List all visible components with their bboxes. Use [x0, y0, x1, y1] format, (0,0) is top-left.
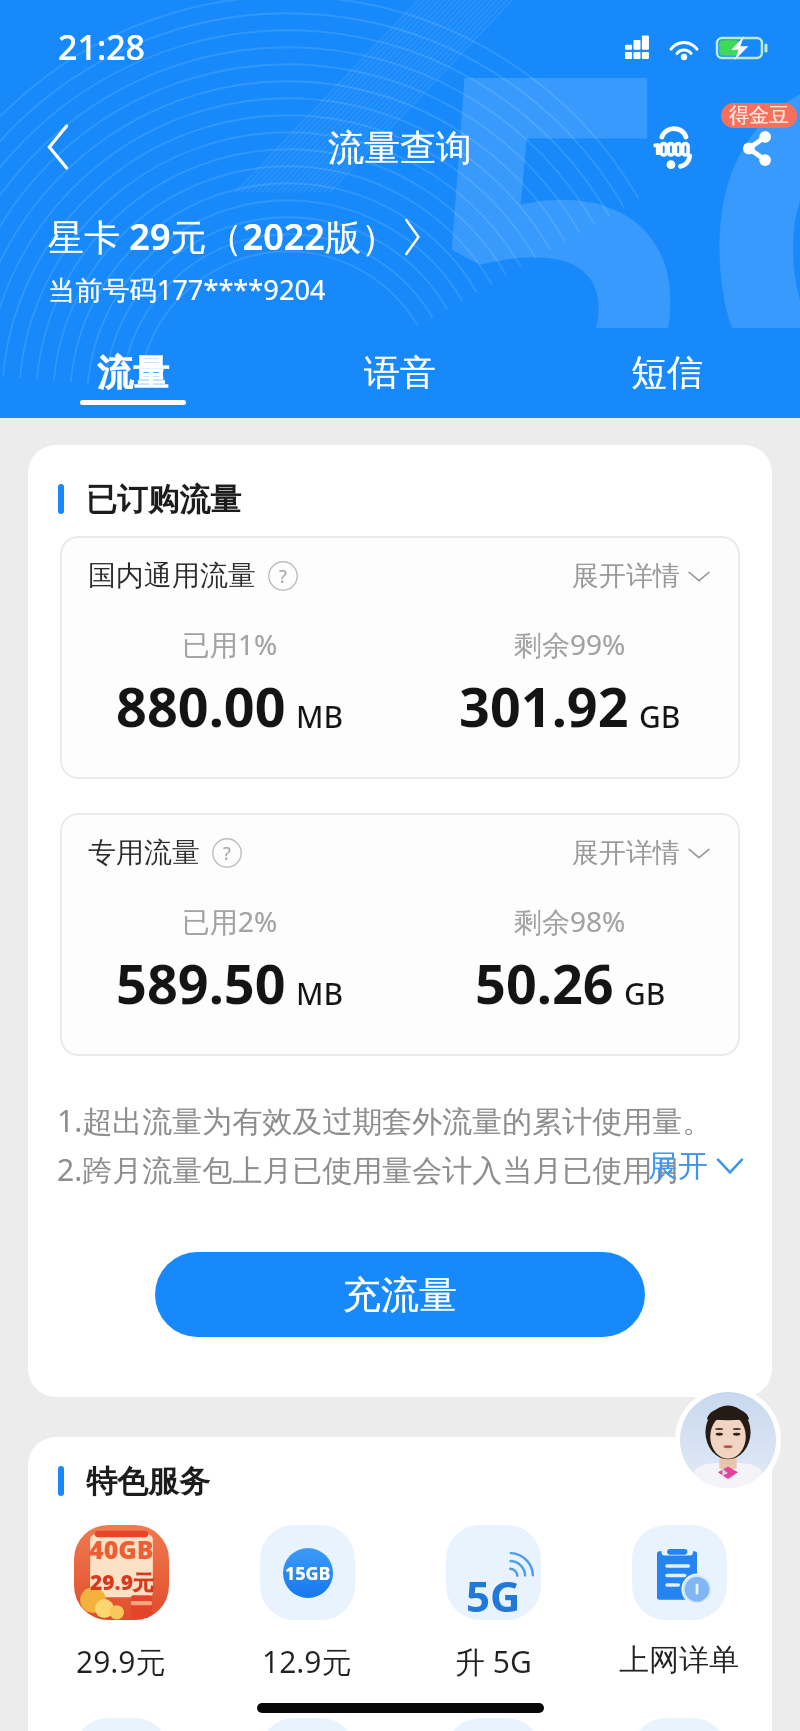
staticText: 5G: [422, 0, 800, 328]
staticText: 2.跨月流量包上月已使用量会计入当月已使用月: [57, 1149, 683, 1190]
staticText: 剩余98%: [514, 902, 626, 940]
staticText: 国内通用流量: [88, 558, 256, 593]
staticText: 特色服务: [86, 1462, 210, 1501]
button[interactable]: Back: [16, 105, 100, 189]
staticText: MB: [296, 696, 344, 737]
staticText: 展开详情: [572, 559, 680, 593]
staticText: 已用1%: [182, 625, 278, 663]
staticText: 升 5G: [455, 1641, 532, 1682]
staticText: 40GB: [89, 1532, 154, 1566]
staticText: 15GB: [285, 1561, 331, 1586]
staticText: 已用2%: [182, 902, 278, 940]
staticText: 展开详情: [572, 836, 680, 870]
button[interactable]: 短信: [533, 350, 800, 418]
staticText: GB: [624, 973, 666, 1014]
button[interactable]: 国内通用流量: [60, 536, 740, 779]
button[interactable]: 语音: [266, 350, 533, 418]
staticText: 充流量: [343, 1271, 457, 1319]
button[interactable]: 15GB: [214, 1525, 400, 1682]
button[interactable]: [400, 1718, 586, 1731]
staticText: 29.9元: [76, 1641, 166, 1682]
staticText: 21:28: [58, 24, 146, 70]
button[interactable]: Customer service 10000: [634, 109, 712, 187]
staticText: 1.超出流量为有效及过期套外流量的累计使用量。: [57, 1100, 713, 1141]
staticText: MB: [296, 973, 344, 1014]
button[interactable]: [214, 1718, 400, 1731]
button[interactable]: 40GB: [28, 1525, 214, 1682]
staticText: 589.50: [116, 946, 286, 1020]
staticText: 5G: [466, 1567, 521, 1620]
button[interactable]: 专用流量: [60, 813, 740, 1056]
staticText: ?: [279, 564, 287, 589]
button[interactable]: 流量: [0, 350, 266, 418]
staticText: 语音: [364, 350, 436, 395]
staticText: 星卡 29元（2022版）: [48, 212, 397, 261]
button[interactable]: 5G: [400, 1525, 586, 1682]
staticText: 已订购流量: [86, 480, 241, 519]
staticText: 流量查询: [328, 125, 472, 170]
staticText: 50.26: [475, 946, 614, 1020]
staticText: ?: [223, 841, 231, 866]
staticText: 剩余99%: [514, 625, 626, 663]
staticText: 短信: [631, 350, 703, 395]
button[interactable]: Customer service assistant: [680, 1392, 776, 1488]
staticText: 得金豆: [729, 103, 789, 128]
button[interactable]: 星卡 29元（2022版）: [48, 212, 421, 261]
button[interactable]: 充流量: [155, 1252, 645, 1337]
button[interactable]: 展开: [648, 1147, 742, 1185]
staticText: 301.92: [459, 669, 629, 743]
staticText: 当前号码177****9204: [48, 271, 326, 308]
staticText: 流量: [97, 350, 169, 395]
staticText: 29.9元: [90, 1568, 154, 1597]
staticText: GB: [639, 696, 681, 737]
button[interactable]: Share: [718, 109, 796, 187]
staticText: 展开: [648, 1147, 708, 1185]
button[interactable]: [28, 1718, 214, 1731]
staticText: 12.9元: [262, 1641, 352, 1682]
staticText: 上网详单: [619, 1641, 739, 1679]
staticText: 880.00: [116, 669, 286, 743]
button[interactable]: [586, 1718, 772, 1731]
staticText: 专用流量: [88, 835, 200, 870]
button[interactable]: 上网详单: [586, 1525, 772, 1679]
